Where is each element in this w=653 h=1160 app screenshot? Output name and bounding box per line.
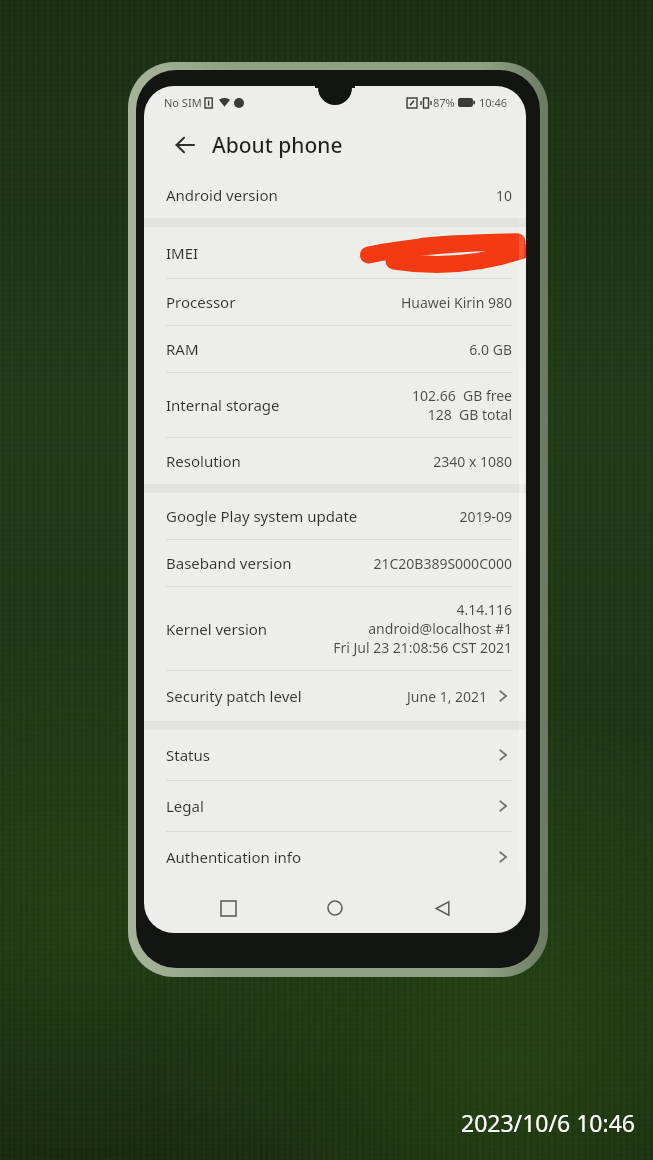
staticText: 102.66 GB free bbox=[411, 386, 512, 405]
staticText: Google Play system update bbox=[166, 506, 459, 526]
staticText: 10 bbox=[495, 186, 512, 205]
staticText: Fri Jul 23 21:08:56 CST 2021 bbox=[333, 638, 512, 657]
button[interactable]: Authentication info bbox=[144, 832, 526, 882]
button[interactable]: Google Play system update bbox=[144, 493, 526, 539]
staticText: Status bbox=[166, 745, 496, 765]
button[interactable]: RAM bbox=[144, 326, 526, 372]
button[interactable]: IMEI bbox=[144, 227, 526, 278]
staticText: Authentication info bbox=[166, 847, 496, 867]
staticText: 21C20B389S000C000 bbox=[373, 554, 512, 573]
button[interactable]: Back bbox=[419, 885, 465, 931]
button[interactable]: Android version bbox=[144, 172, 526, 218]
button[interactable]: Security patch level bbox=[144, 671, 526, 721]
button[interactable]: Recents bbox=[205, 885, 251, 931]
staticText: 6.0 GB bbox=[469, 340, 512, 359]
staticText: 128 GB total bbox=[427, 405, 512, 424]
staticText: 2023/10/6 10:46 bbox=[461, 1107, 635, 1138]
button[interactable]: Resolution bbox=[144, 438, 526, 484]
staticText: Baseband version bbox=[166, 553, 373, 573]
button[interactable]: Home bbox=[312, 885, 358, 931]
staticText: 2340 x 1080 bbox=[433, 452, 512, 471]
button[interactable]: Back bbox=[166, 126, 204, 164]
button[interactable]: Status bbox=[144, 730, 526, 780]
staticText: android@localhost #1 bbox=[368, 619, 512, 638]
staticText: 4.14.116 bbox=[456, 600, 512, 619]
staticText: Kernel version bbox=[166, 619, 333, 639]
button[interactable]: Processor bbox=[144, 279, 526, 325]
staticText: IMEI bbox=[166, 243, 199, 263]
staticText: Processor bbox=[166, 292, 400, 312]
staticText: Internal storage bbox=[166, 395, 411, 415]
staticText: 2019-09 bbox=[459, 507, 512, 526]
staticText: Huawei Kirin 980 bbox=[400, 293, 512, 312]
staticText: 87% bbox=[433, 95, 455, 110]
staticText: 10:46 bbox=[479, 95, 508, 110]
button[interactable]: Baseband version bbox=[144, 540, 526, 586]
staticText: Security patch level bbox=[166, 686, 407, 706]
staticText: Android version bbox=[166, 185, 495, 205]
staticText: No SIM bbox=[164, 95, 202, 110]
staticText: About phone bbox=[212, 131, 343, 160]
button[interactable]: Internal storage bbox=[144, 373, 526, 437]
staticText: June 1, 2021 bbox=[407, 687, 488, 706]
staticText: Resolution bbox=[166, 451, 433, 471]
staticText: Legal bbox=[166, 796, 496, 816]
button[interactable]: Kernel version bbox=[144, 587, 526, 670]
staticText: RAM bbox=[166, 339, 469, 359]
button[interactable]: Legal bbox=[144, 781, 526, 831]
